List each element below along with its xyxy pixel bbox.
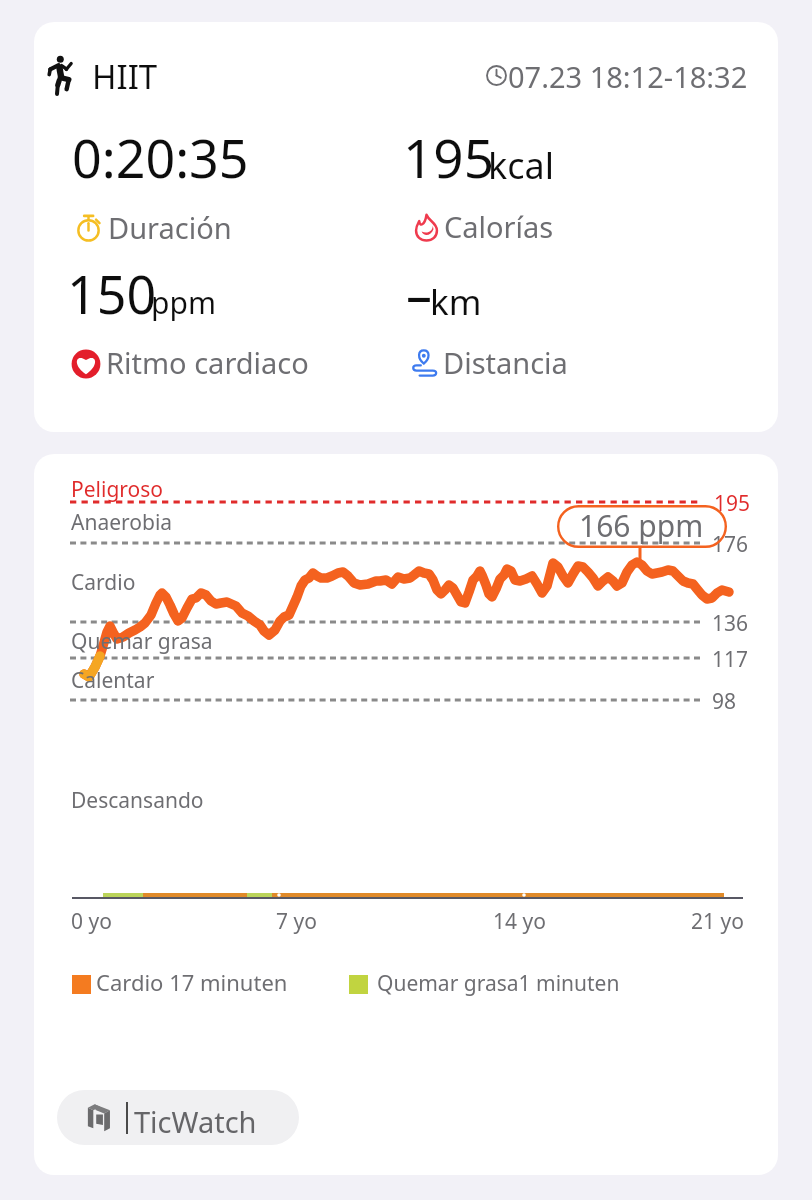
- staticText: 07.23 18:12-18:32: [508, 57, 748, 96]
- staticText: Duración: [108, 208, 232, 247]
- staticText: 0:20:35: [72, 122, 249, 193]
- staticText: 166 ppm: [579, 505, 704, 546]
- staticText: 150: [67, 258, 157, 329]
- staticText: 195: [714, 489, 751, 518]
- staticText: 98: [712, 687, 737, 716]
- staticText: Distancia: [443, 343, 568, 382]
- staticText: HIIT: [92, 54, 158, 99]
- other: Time: [484, 63, 509, 88]
- staticText: Calentar: [71, 666, 155, 695]
- staticText: 14 yo: [493, 907, 546, 936]
- staticText: Quemar grasa1 minuten: [377, 969, 620, 998]
- staticText: TicWatch: [134, 1102, 257, 1141]
- staticText: Descansando: [71, 786, 204, 815]
- button[interactable]: TicWatch: [57, 1090, 299, 1145]
- staticText: Peligroso: [71, 475, 164, 504]
- button[interactable]: Ritmo cardiaco 150 ppm: [66, 266, 396, 386]
- staticText: 195: [403, 121, 494, 193]
- other: Workout type: [48, 55, 74, 96]
- staticText: 136: [712, 609, 749, 638]
- staticText: 176: [712, 530, 749, 559]
- staticText: 0 yo: [71, 907, 112, 936]
- staticText: 21 yo: [691, 907, 744, 936]
- button[interactable]: Duración 0:20:35: [66, 130, 396, 250]
- button[interactable]: Workout type: [34, 22, 778, 432]
- button[interactable]: Calorías 195 kcal: [400, 130, 730, 250]
- button[interactable]: Distancia – km: [400, 266, 730, 386]
- button[interactable]: Quemar grasa1 minuten: [347, 970, 622, 1000]
- button[interactable]: Cardio 17 minuten: [70, 970, 285, 1000]
- staticText: ppm: [151, 282, 216, 323]
- staticText: Quemar grasa: [71, 627, 213, 656]
- staticText: 117: [712, 645, 749, 674]
- staticText: –: [406, 258, 433, 329]
- staticText: Ritmo cardiaco: [106, 343, 309, 382]
- staticText: 7 yo: [276, 907, 317, 936]
- staticText: Anaerobia: [71, 508, 173, 537]
- staticText: Cardio 17 minuten: [96, 967, 288, 997]
- staticText: kcal: [488, 141, 554, 190]
- staticText: km: [430, 278, 482, 326]
- staticText: Cardio: [71, 568, 136, 597]
- staticText: Calorías: [444, 207, 554, 246]
